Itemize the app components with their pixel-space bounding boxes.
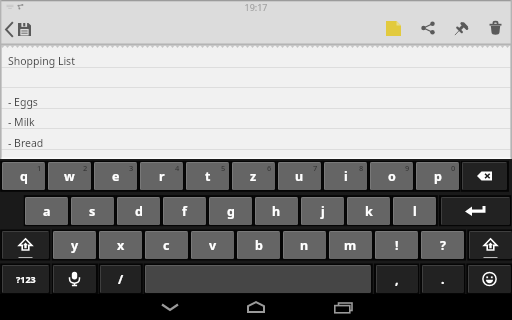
button[interactable]: space	[145, 265, 371, 293]
button[interactable]: j	[301, 197, 344, 225]
button[interactable]: f	[163, 197, 206, 225]
button[interactable]: g	[209, 197, 252, 225]
button[interactable]: Note colour	[376, 13, 410, 43]
staticText: e	[112, 168, 120, 185]
staticText: f	[182, 203, 187, 220]
button[interactable]: x	[99, 231, 142, 259]
staticText: 5	[221, 163, 226, 173]
button[interactable]: s	[71, 197, 114, 225]
staticText: ?	[440, 237, 446, 254]
staticText: - Bread	[8, 136, 44, 150]
staticText: m	[344, 237, 357, 254]
staticText: v	[209, 237, 217, 254]
button[interactable]: k	[347, 197, 390, 225]
button[interactable]: ?123	[2, 265, 49, 293]
staticText: p	[434, 168, 442, 185]
staticText: Shopping List	[8, 54, 75, 68]
button[interactable]: Home	[236, 294, 276, 320]
button[interactable]: z	[232, 162, 275, 190]
staticText: 6	[267, 163, 272, 173]
button[interactable]: shift	[469, 231, 512, 259]
button[interactable]: d	[117, 197, 160, 225]
button[interactable]: q	[2, 162, 45, 190]
staticText: 19:17	[0, 1, 512, 13]
staticText: 1	[37, 163, 42, 173]
staticText: t	[205, 168, 211, 185]
button[interactable]: m	[329, 231, 372, 259]
staticText: 2	[83, 163, 88, 173]
staticText: c	[163, 237, 170, 254]
staticText: k	[365, 203, 373, 220]
staticText: y	[71, 237, 79, 254]
staticText: !	[395, 237, 399, 254]
button[interactable]: v	[191, 231, 234, 259]
staticText: g	[227, 203, 235, 220]
staticText: b	[255, 237, 263, 254]
staticText: x	[117, 237, 125, 254]
button[interactable]: b	[237, 231, 280, 259]
button[interactable]: Save	[12, 14, 36, 44]
staticText: z	[250, 168, 257, 185]
staticText: 7	[313, 163, 318, 173]
staticText: h	[272, 203, 281, 220]
staticText: o	[388, 168, 396, 185]
button[interactable]: shift	[2, 231, 49, 259]
staticText: 0	[451, 163, 456, 173]
button[interactable]: Delete	[478, 13, 512, 43]
staticText: d	[135, 203, 143, 220]
button[interactable]: l	[393, 197, 436, 225]
staticText: - Eggs	[8, 95, 38, 109]
button[interactable]: /	[100, 265, 141, 293]
staticText: r	[159, 168, 165, 185]
staticText: l	[413, 203, 417, 220]
button[interactable]: ?	[421, 231, 464, 259]
button[interactable]: a	[25, 197, 68, 225]
staticText: 9	[405, 163, 410, 173]
staticText: j	[321, 203, 325, 220]
button[interactable]: h	[255, 197, 298, 225]
button[interactable]: n	[283, 231, 326, 259]
staticText: a	[43, 203, 51, 220]
button[interactable]: Hide keyboard	[150, 294, 190, 320]
staticText: .	[441, 271, 445, 288]
staticText: ,	[395, 271, 399, 288]
button[interactable]: e	[94, 162, 137, 190]
staticText: w	[64, 168, 75, 185]
button[interactable]: Pin	[444, 13, 478, 43]
staticText: s	[89, 203, 96, 220]
button[interactable]: u	[278, 162, 321, 190]
staticText: i	[344, 168, 348, 185]
staticText: 4	[175, 163, 180, 173]
staticText: ?123	[16, 273, 36, 285]
button[interactable]: o	[370, 162, 413, 190]
button[interactable]: i	[324, 162, 367, 190]
staticText: n	[300, 237, 309, 254]
button[interactable]: backspace	[462, 162, 507, 190]
staticText: 8	[359, 163, 364, 173]
button[interactable]: enter	[441, 197, 510, 225]
button[interactable]: .	[422, 265, 464, 293]
button[interactable]: c	[145, 231, 188, 259]
button[interactable]: Share	[411, 13, 445, 43]
button[interactable]: !	[375, 231, 418, 259]
staticText: q	[20, 168, 28, 185]
staticText: - Milk	[8, 115, 35, 129]
button[interactable]: p	[416, 162, 459, 190]
button[interactable]: ,	[376, 265, 418, 293]
button[interactable]: Back	[0, 14, 19, 44]
staticText: 3	[129, 163, 134, 173]
button[interactable]: r	[140, 162, 183, 190]
staticText: u	[295, 168, 304, 185]
staticText: /	[118, 271, 124, 288]
button[interactable]: y	[53, 231, 96, 259]
button[interactable]: w	[48, 162, 91, 190]
button[interactable]: emoji	[468, 265, 511, 293]
button[interactable]: Recents	[323, 294, 363, 320]
button[interactable]: mic	[53, 265, 96, 293]
button[interactable]: t	[186, 162, 229, 190]
